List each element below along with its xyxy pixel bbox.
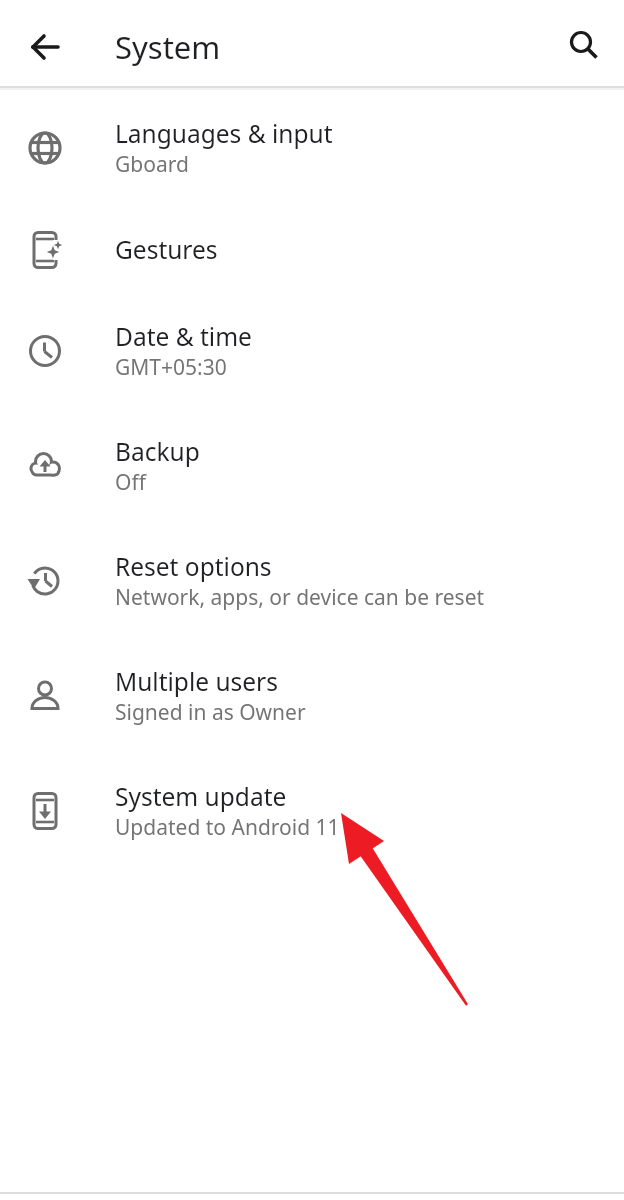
staticText: Off bbox=[115, 468, 146, 497]
button[interactable] bbox=[0, 7, 90, 86]
staticText: Multiple users bbox=[115, 665, 278, 698]
staticText: Gestures bbox=[115, 233, 218, 266]
staticText: Network, apps, or device can be reset bbox=[115, 583, 485, 612]
staticText: Reset options bbox=[115, 550, 272, 583]
staticText: Date & time bbox=[115, 320, 252, 353]
staticText: Gboard bbox=[115, 150, 189, 179]
button[interactable]: Reset options bbox=[0, 523, 624, 638]
button[interactable]: Multiple users bbox=[0, 638, 624, 753]
staticText: Signed in as Owner bbox=[115, 698, 306, 727]
button[interactable]: Gestures bbox=[0, 206, 624, 293]
staticText: System update bbox=[115, 780, 287, 813]
staticText: Updated to Android 11 bbox=[115, 813, 340, 842]
button[interactable] bbox=[540, 7, 624, 86]
button[interactable]: Languages & input bbox=[0, 90, 624, 206]
staticText: GMT+05:30 bbox=[115, 353, 227, 382]
staticText: Languages & input bbox=[115, 117, 333, 150]
staticText: Backup bbox=[115, 435, 200, 468]
staticText: System bbox=[115, 26, 221, 68]
button[interactable]: Backup bbox=[0, 408, 624, 523]
button[interactable]: Date & time bbox=[0, 293, 624, 408]
button[interactable]: System update bbox=[0, 753, 624, 869]
